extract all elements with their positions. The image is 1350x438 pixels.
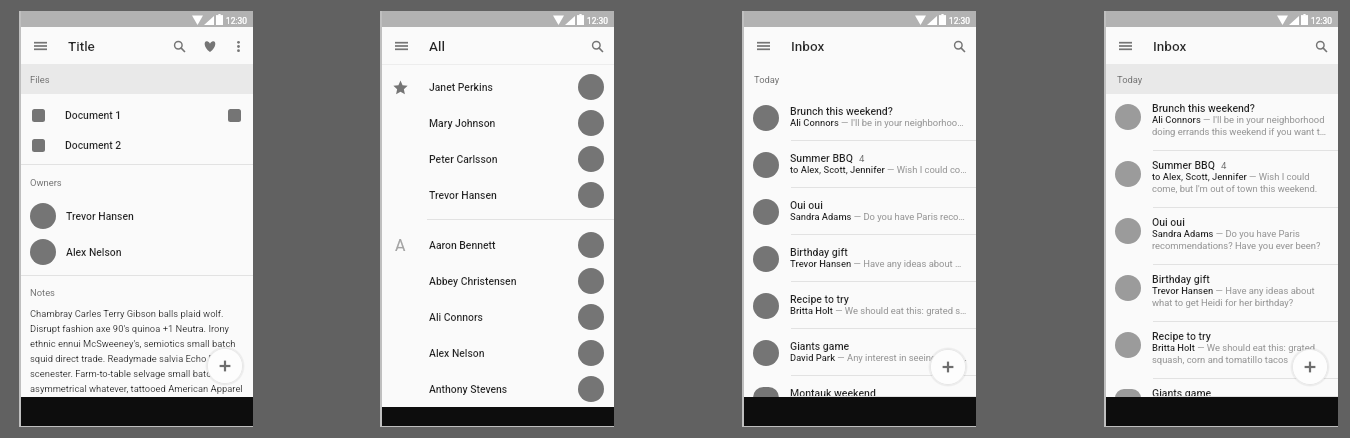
staticText: Ali Connors — I'll be in your neighborho… [1152, 114, 1330, 138]
button[interactable]: Oui oui [1106, 208, 1338, 265]
staticText: Birthday gift [1152, 273, 1210, 285]
staticText: Recipe to try [790, 293, 849, 305]
staticText: 12:30 [226, 16, 247, 26]
staticText: David Park — Any interest in seeing the … [790, 352, 968, 363]
button[interactable]: Oui oui [744, 188, 976, 235]
button[interactable]: Giants game [744, 329, 976, 376]
staticText: Recipe to try [1152, 330, 1211, 342]
button[interactable]: Search [1310, 35, 1332, 57]
button[interactable]: Add [930, 349, 966, 385]
staticText: Sandra Adams — Do you have Paris recomme… [1152, 228, 1330, 252]
button[interactable]: Recipe to try [744, 282, 976, 329]
staticText: Trevor Hansen — Have any ideas about wha… [1152, 285, 1330, 309]
staticText: Ali Connors — I'll be in your neighborho… [790, 117, 968, 128]
staticText: 12:30 [587, 16, 608, 26]
staticText: Peter Carlsson [429, 153, 498, 165]
button[interactable]: Search [168, 35, 190, 57]
staticText: Document 2 [65, 139, 122, 151]
staticText: Trevor Hansen [429, 189, 497, 201]
button[interactable]: Peter Carlsson [382, 141, 614, 177]
staticText: Document 1 [65, 109, 122, 121]
staticText: Montauk weekend [790, 387, 876, 399]
staticText: Today [754, 74, 780, 85]
button[interactable]: More options [227, 35, 249, 57]
button[interactable]: Menu [751, 34, 775, 58]
button[interactable]: Janet Perkins [382, 69, 614, 105]
staticText: 12:30 [1311, 16, 1332, 26]
button[interactable]: Summer BBQ [1106, 151, 1338, 208]
staticText: to Alex, Scott, Jennifer — Wish I could … [790, 164, 968, 175]
staticText: Ali Connors [429, 311, 483, 323]
button[interactable]: Search [948, 35, 970, 57]
button[interactable]: Alex Nelson [21, 234, 253, 270]
button[interactable]: Abbey Christensen [382, 263, 614, 299]
staticText: Brunch this weekend? [790, 105, 893, 117]
button[interactable]: Ali Connors [382, 299, 614, 335]
staticText: Sandra Adams — Do you have Paris recomme… [790, 211, 968, 222]
staticText: Chambray Carles Terry Gibson balls plaid… [30, 308, 251, 394]
staticText: Inbox [791, 38, 825, 54]
staticText: Inbox [1153, 38, 1187, 54]
staticText: Owners [30, 177, 62, 188]
staticText: Files [30, 74, 50, 85]
staticText: Mary Johnson [429, 117, 496, 129]
staticText: Today [1117, 74, 1143, 85]
staticText: Giants game [1152, 387, 1212, 399]
staticText: Janet Perkins [429, 81, 493, 93]
staticText: 4 [1221, 160, 1227, 171]
staticText: Birthday gift [790, 246, 848, 258]
button[interactable]: Menu [389, 34, 413, 58]
button[interactable]: Anthony Stevens [382, 371, 614, 407]
button[interactable]: Brunch this weekend? [1106, 94, 1338, 151]
staticText: Summer BBQ [790, 152, 853, 164]
staticText: Trevor Hansen — Have any ideas about wha… [790, 258, 968, 269]
button[interactable]: Recipe to try [1106, 322, 1338, 379]
button[interactable]: Birthday gift [1106, 265, 1338, 322]
button[interactable]: Menu [1113, 34, 1137, 58]
button[interactable]: Summer BBQ [744, 141, 976, 188]
staticText: Alex Nelson [429, 347, 485, 359]
button[interactable]: Add [1292, 349, 1328, 385]
button[interactable]: Montauk weekend [744, 376, 976, 397]
button[interactable]: Document 1 [21, 100, 253, 130]
staticText: Summer BBQ [1152, 159, 1215, 171]
staticText: Oui oui [790, 199, 823, 211]
button[interactable]: A [382, 227, 614, 263]
staticText: Title [68, 38, 95, 54]
button[interactable]: Trevor Hansen [382, 177, 614, 213]
staticText: Oui oui [1152, 216, 1185, 228]
staticText: A [395, 236, 406, 255]
staticText: Britta Holt — We should eat this: grated… [790, 305, 968, 316]
button[interactable]: Birthday gift [744, 235, 976, 282]
button[interactable]: Document 2 [21, 130, 253, 160]
staticText: Anthony Stevens [429, 383, 508, 395]
staticText: Trevor Hansen [66, 210, 134, 222]
button[interactable]: Add [207, 348, 243, 384]
button[interactable]: Alex Nelson [382, 335, 614, 371]
button[interactable]: Mary Johnson [382, 105, 614, 141]
staticText: All [429, 38, 445, 54]
staticText: Notes [30, 287, 55, 298]
button[interactable]: Brunch this weekend? [744, 94, 976, 141]
staticText: Britta Holt — We should eat this: grated… [1152, 342, 1330, 366]
staticText: 12:30 [949, 16, 970, 26]
staticText: 4 [859, 153, 865, 164]
button[interactable]: Favorite [199, 35, 221, 57]
button[interactable]: Trevor Hansen [21, 198, 253, 234]
staticText: Giants game [790, 340, 850, 352]
button[interactable]: Search [586, 35, 608, 57]
staticText: Aaron Bennett [429, 239, 496, 251]
staticText: to Alex, Scott, Jennifer — Wish I could … [1152, 171, 1330, 195]
staticText: Abbey Christensen [429, 275, 517, 287]
staticText: Alex Nelson [66, 246, 122, 258]
staticText: Brunch this weekend? [1152, 102, 1255, 114]
button[interactable]: Giants game [1106, 379, 1338, 397]
button[interactable]: Menu [28, 34, 52, 58]
